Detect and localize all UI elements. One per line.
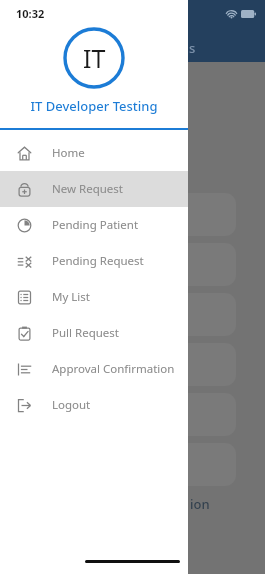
staticText: Pull Request: [52, 325, 119, 341]
other: Battery: [241, 10, 256, 18]
staticText: IT: [83, 41, 106, 75]
staticText: Pending Patient: [52, 217, 139, 233]
button[interactable]: Pending Request: [0, 243, 188, 279]
staticText: Pending Request: [52, 253, 144, 269]
staticText: Home: [52, 145, 85, 161]
staticText: s: [189, 39, 196, 57]
button[interactable]: Home: [0, 135, 188, 171]
staticText: Logout: [52, 397, 91, 413]
staticText: My List: [52, 289, 90, 305]
staticText: 10:32: [16, 6, 45, 21]
other: Wi-Fi: [226, 8, 237, 19]
staticText: New Request: [52, 181, 123, 197]
button[interactable]: Approval Confirmation: [0, 351, 188, 387]
button[interactable]: Pull Request: [0, 315, 188, 351]
staticText: Approval Confirmation: [52, 361, 175, 377]
button[interactable]: Pending Patient: [0, 207, 188, 243]
button[interactable]: New Request: [0, 171, 188, 207]
button[interactable]: Logout: [0, 387, 188, 423]
button[interactable]: My List: [0, 279, 188, 315]
staticText: ion: [190, 495, 210, 513]
staticText: IT Developer Testing: [30, 97, 158, 115]
